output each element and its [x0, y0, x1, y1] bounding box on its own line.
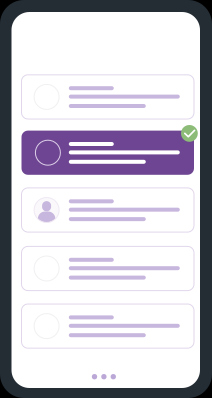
button[interactable]: Contact row 1 — [0, 0, 172, 44]
button[interactable]: Contact row 5 — [0, 0, 172, 44]
button[interactable]: Contact row 3 — [0, 0, 172, 44]
button[interactable]: Contact row 4 — [0, 0, 172, 44]
button[interactable]: Contact row 2, selected — [0, 0, 212, 398]
